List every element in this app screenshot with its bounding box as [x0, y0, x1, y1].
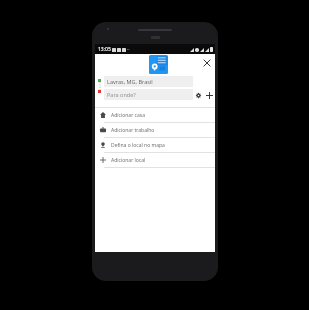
button[interactable]: Opcoes da rota: [193, 90, 203, 100]
staticText: 13:05: [98, 46, 111, 53]
button[interactable]: Para onde?: [104, 89, 193, 100]
staticText: Defina o local no mapa: [111, 142, 165, 149]
staticText: Adicionar casa: [111, 112, 145, 119]
button[interactable]: Defina o local no mapa: [95, 138, 215, 152]
staticText: Lavras, MG, Brasil: [107, 78, 153, 85]
staticText: ··: [127, 46, 130, 53]
button[interactable]: Adicionar casa: [95, 108, 215, 122]
staticText: Para onde?: [107, 91, 136, 98]
button[interactable]: Adicionar parada: [203, 89, 215, 101]
staticText: Adicionar local: [111, 157, 146, 164]
staticText: Adicionar trabalho: [111, 127, 155, 134]
button[interactable]: Adicionar local: [95, 153, 215, 167]
button[interactable]: Adicionar trabalho: [95, 123, 215, 137]
button[interactable]: Lavras, MG, Brasil: [104, 76, 193, 87]
button[interactable]: Icone do app: [149, 55, 168, 74]
button[interactable]: Fechar: [201, 57, 213, 69]
